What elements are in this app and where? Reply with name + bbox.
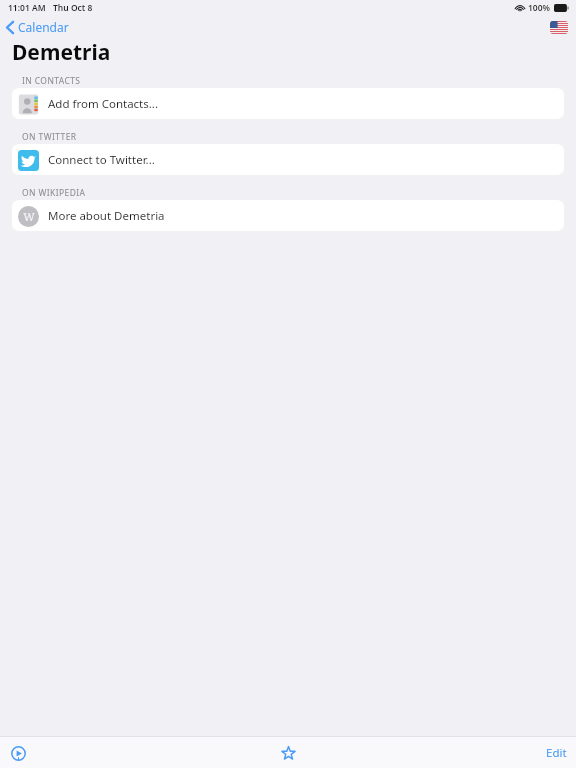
staticText: Thu Oct 8 [53, 2, 93, 14]
staticText: Calendar [18, 19, 69, 35]
staticText: Demetria [12, 38, 111, 66]
button[interactable]: Play [4, 739, 32, 767]
staticText: Connect to Twitter... [48, 152, 155, 168]
staticText: More about Demetria [48, 208, 165, 224]
staticText: ON TWITTER [22, 131, 77, 143]
staticText: 100% [528, 2, 551, 14]
staticText: W [23, 209, 35, 224]
staticText: ON WIKIPEDIA [22, 187, 86, 199]
button[interactable]: W [12, 200, 564, 231]
staticText: IN CONTACTS [22, 75, 81, 87]
staticText: Add from Contacts... [48, 96, 159, 112]
staticText: Edit [546, 745, 567, 761]
button[interactable]: Favorite [274, 739, 302, 767]
button[interactable]: Add from Contacts... [12, 88, 564, 119]
button[interactable]: Region: United States [550, 21, 568, 34]
button[interactable]: Connect to Twitter... [12, 144, 564, 175]
staticText: 11:01 AM [8, 2, 46, 14]
button[interactable]: Edit [537, 741, 576, 765]
button[interactable]: Calendar [0, 17, 75, 37]
